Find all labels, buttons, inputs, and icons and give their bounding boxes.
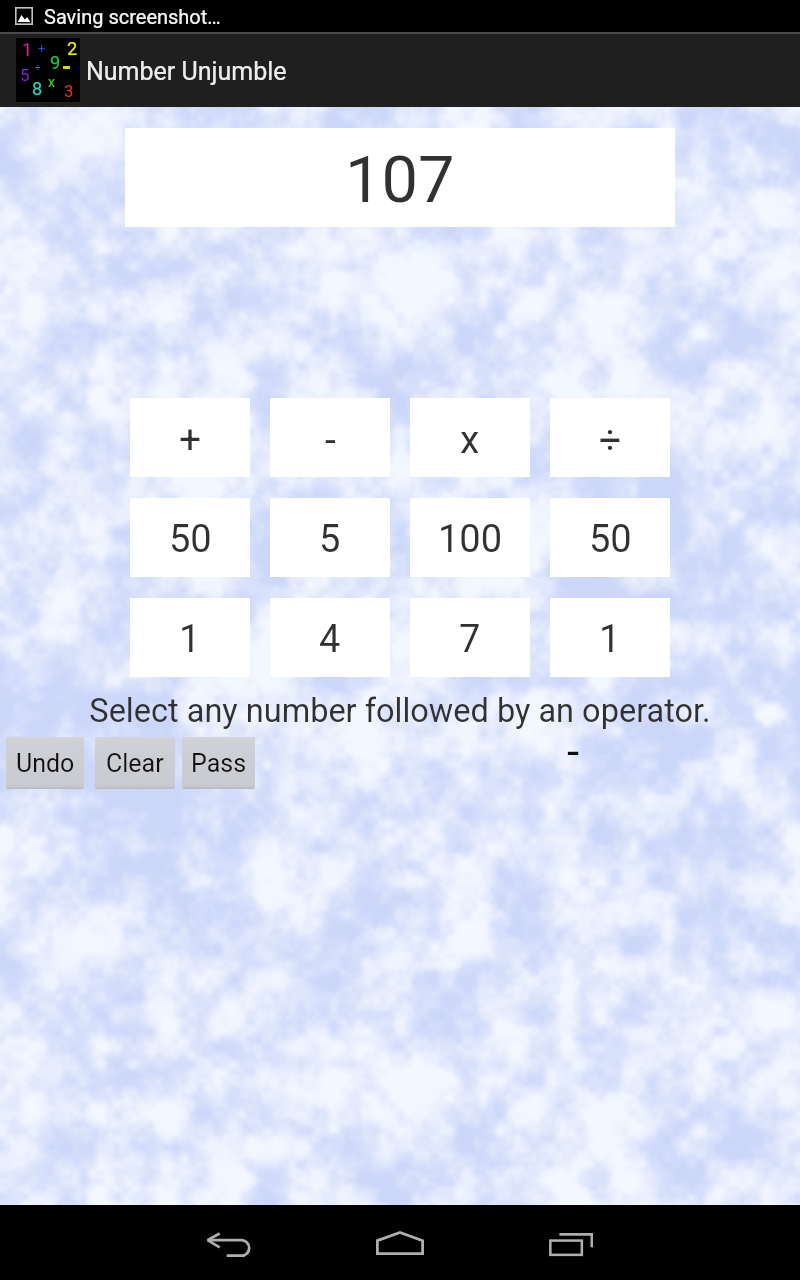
button[interactable]: 1 (130, 598, 250, 677)
staticText: 8 (32, 78, 43, 99)
staticText: - (567, 726, 580, 778)
staticText: 1 (22, 39, 33, 60)
staticText: Undo (16, 749, 75, 778)
staticText: + (179, 417, 202, 463)
button[interactable]: Clear (95, 737, 175, 789)
staticText: Pass (191, 749, 247, 778)
button[interactable]: Back (188, 1205, 272, 1280)
staticText: Clear (106, 749, 164, 778)
button[interactable]: 107 (125, 128, 675, 227)
staticText: 4 (319, 617, 341, 662)
staticText: x (48, 74, 55, 90)
staticText: 50 (589, 517, 632, 562)
staticText: Saving screenshot… (44, 5, 221, 28)
staticText: Number Unjumble (86, 57, 287, 86)
staticText: Select any number followed by an operato… (0, 692, 800, 730)
button[interactable]: 4 (270, 598, 390, 677)
staticText: + (38, 41, 46, 56)
staticText: ÷ (35, 62, 41, 74)
button[interactable]: Pass (182, 737, 255, 789)
staticText: x (460, 417, 480, 463)
button[interactable]: 100 (410, 498, 530, 577)
button[interactable]: - (270, 398, 390, 477)
staticText: ÷ (599, 417, 622, 463)
staticText: 50 (169, 517, 212, 562)
staticText: 5 (20, 65, 30, 85)
staticText: 107 (345, 142, 455, 218)
staticText: 5 (319, 517, 341, 562)
button[interactable]: x (410, 398, 530, 477)
staticText: 1 (179, 617, 201, 662)
staticText: 9 (50, 52, 61, 73)
button[interactable]: Home (358, 1205, 442, 1280)
staticText: - (325, 417, 336, 463)
staticText: 7 (459, 617, 481, 662)
button[interactable]: Recent apps (529, 1205, 613, 1280)
staticText: 3 (64, 81, 74, 101)
button[interactable]: Undo (6, 737, 84, 789)
staticText: 1 (599, 617, 621, 662)
staticText: 100 (438, 517, 503, 562)
button[interactable]: + (130, 398, 250, 477)
button[interactable]: 50 (550, 498, 670, 577)
button[interactable]: ÷ (550, 398, 670, 477)
button[interactable]: 50 (130, 498, 250, 577)
button[interactable]: 5 (270, 498, 390, 577)
button[interactable]: 7 (410, 598, 530, 677)
staticText: 2 (67, 38, 78, 59)
button[interactable]: 1 (550, 598, 670, 677)
